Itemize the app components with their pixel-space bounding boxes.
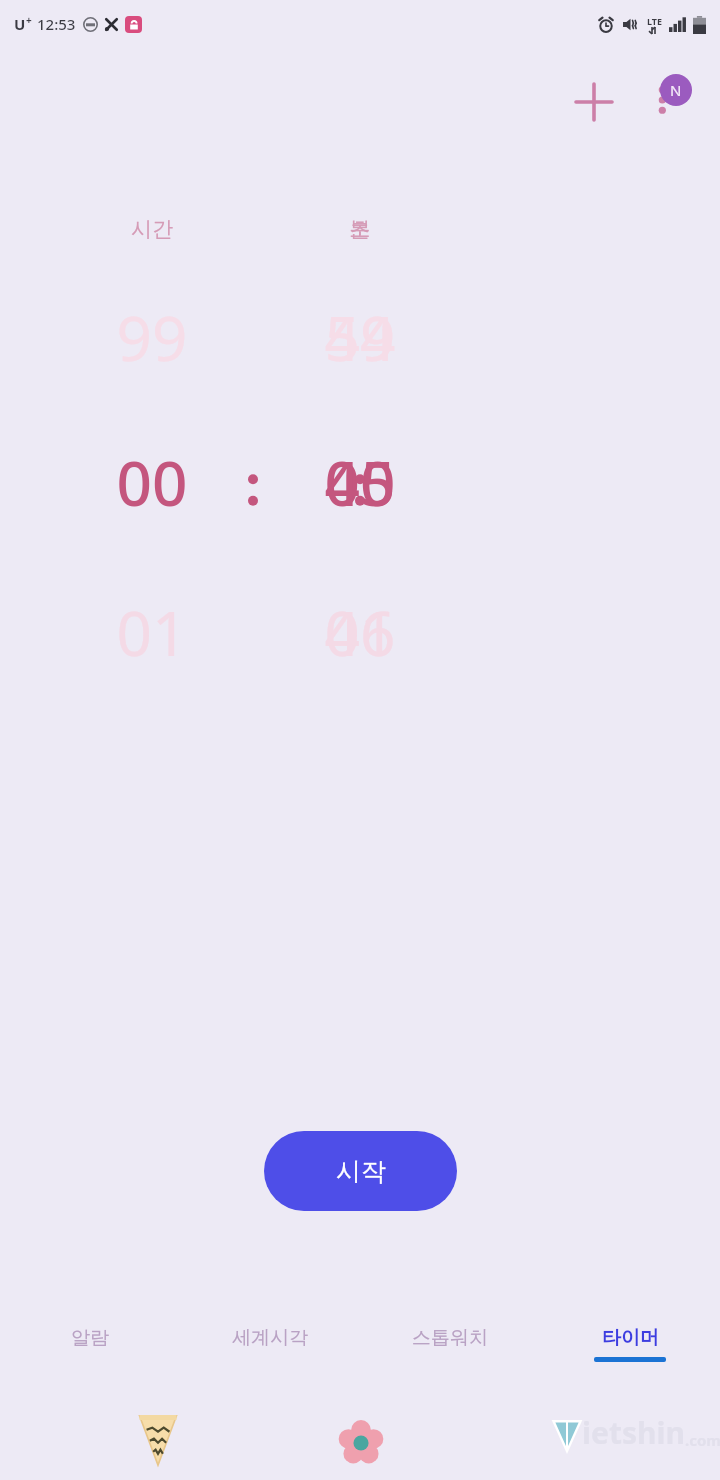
- staticText: N: [670, 80, 682, 100]
- staticText: 12:53: [37, 14, 76, 34]
- staticText: .com: [685, 1430, 720, 1450]
- staticText: 알람: [71, 1326, 109, 1350]
- button[interactable]: 분: [0, 216, 720, 242]
- button[interactable]: 00: [0, 440, 304, 524]
- staticText: ietshin: [582, 1412, 685, 1453]
- staticText: LTE: [647, 15, 663, 27]
- staticText: 스톱워치: [412, 1326, 488, 1350]
- staticText: 시작: [336, 1156, 386, 1187]
- button[interactable]: 세계시각: [180, 1318, 360, 1388]
- staticText: 세계시각: [232, 1326, 308, 1350]
- staticText: 타이머: [602, 1326, 659, 1350]
- button[interactable]: 01: [0, 590, 720, 674]
- button[interactable]: 초: [0, 216, 720, 242]
- button[interactable]: 타이머 추가: [562, 70, 626, 134]
- button[interactable]: 46: [0, 590, 720, 674]
- button[interactable]: 스톱워치: [360, 1318, 540, 1388]
- button[interactable]: 45: [0, 440, 720, 524]
- staticText: U: [14, 14, 26, 34]
- button[interactable]: 00: [0, 440, 720, 524]
- button[interactable]: 타이머: [540, 1318, 720, 1388]
- button[interactable]: 알람: [0, 1318, 180, 1388]
- button[interactable]: 시작: [264, 1131, 457, 1211]
- staticText: +: [26, 13, 32, 27]
- button[interactable]: 더보기: [638, 68, 702, 132]
- button[interactable]: 시간: [0, 216, 304, 242]
